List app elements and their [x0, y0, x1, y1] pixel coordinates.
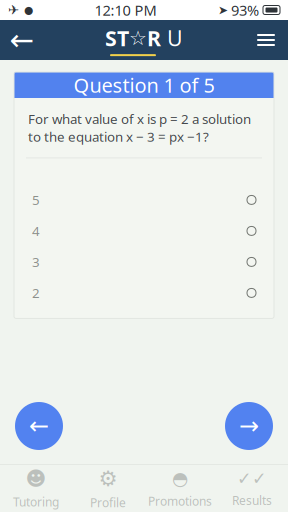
- staticText: ←: [9, 23, 34, 57]
- staticText: ✈: [8, 2, 19, 17]
- button[interactable]: 4: [14, 215, 274, 246]
- staticText: Question 1 of 5: [73, 72, 214, 98]
- staticText: For what value of x is p = 2 a solution …: [28, 110, 251, 145]
- button[interactable]: Next question: [225, 402, 273, 450]
- button[interactable]: 3: [14, 246, 274, 277]
- button[interactable]: ⚙: [72, 465, 144, 512]
- button[interactable]: Menu: [244, 20, 288, 60]
- button[interactable]: ◓: [144, 465, 216, 512]
- staticText: ➤: [218, 3, 228, 17]
- staticText: Results: [232, 492, 272, 508]
- staticText: 3: [32, 253, 40, 271]
- staticText: ←: [29, 412, 49, 440]
- staticText: Promotions: [148, 493, 212, 509]
- staticText: R: [147, 24, 161, 52]
- button[interactable]: ☻: [0, 465, 72, 512]
- staticText: Profile: [90, 495, 126, 510]
- button[interactable]: 5: [14, 184, 274, 215]
- button[interactable]: ✓✓: [216, 465, 288, 512]
- staticText: 93%: [231, 0, 259, 20]
- staticText: 4: [32, 222, 40, 240]
- staticText: Tutoring: [13, 494, 59, 510]
- staticText: 12:10 PM: [94, 0, 156, 20]
- staticText: ●: [24, 4, 33, 16]
- staticText: ◓: [172, 468, 188, 489]
- button[interactable]: Back: [0, 20, 44, 60]
- staticText: ☆: [129, 27, 147, 49]
- staticText: U: [161, 24, 183, 52]
- staticText: ☻: [25, 467, 46, 490]
- button[interactable]: Previous question: [15, 402, 63, 450]
- staticText: 5: [32, 191, 40, 209]
- staticText: ⚙: [98, 466, 117, 491]
- staticText: 2: [32, 284, 40, 302]
- staticText: ✓✓: [237, 469, 267, 488]
- button[interactable]: 2: [14, 277, 274, 308]
- staticText: →: [239, 412, 259, 440]
- staticText: ST: [105, 24, 129, 52]
